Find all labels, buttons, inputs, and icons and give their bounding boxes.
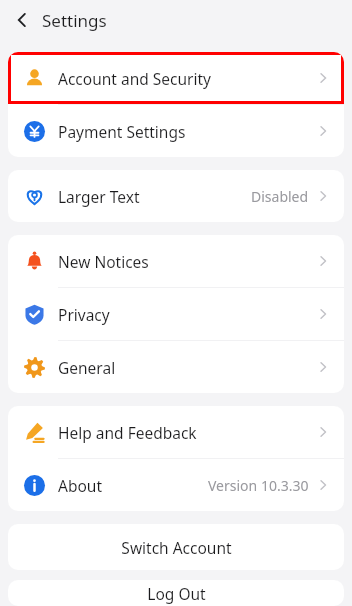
button[interactable]: Larger Text xyxy=(8,170,344,222)
button[interactable]: New Notices xyxy=(8,235,344,287)
button[interactable]: Back xyxy=(6,4,38,36)
staticText: Log Out xyxy=(147,583,206,604)
button[interactable]: About xyxy=(8,459,344,511)
button[interactable]: Privacy xyxy=(8,288,344,340)
button[interactable]: Log Out xyxy=(8,580,344,606)
staticText: Larger Text xyxy=(58,186,140,207)
button[interactable]: Help and Feedback xyxy=(8,406,344,458)
staticText: About xyxy=(58,475,102,496)
staticText: Settings xyxy=(42,9,107,32)
staticText: New Notices xyxy=(58,251,149,272)
button[interactable]: General xyxy=(8,341,344,393)
staticText: Disabled xyxy=(251,187,309,206)
staticText: Version 10.3.30 xyxy=(208,476,309,495)
button[interactable]: Payment Settings xyxy=(8,105,344,157)
staticText: Payment Settings xyxy=(58,121,186,142)
staticText: General xyxy=(58,357,116,378)
staticText: Help and Feedback xyxy=(58,422,197,443)
button[interactable]: Switch Account xyxy=(8,524,344,570)
staticText: Switch Account xyxy=(121,537,232,558)
staticText: Privacy xyxy=(58,304,110,325)
staticText: Account and Security xyxy=(58,68,211,89)
button[interactable]: Account and Security xyxy=(8,52,344,104)
